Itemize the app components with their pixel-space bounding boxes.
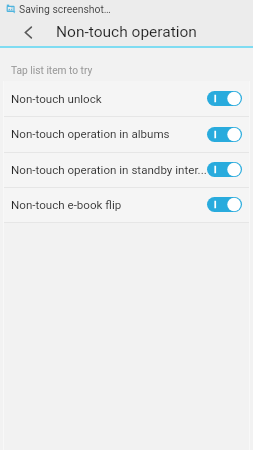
button[interactable]: Non-touch operation in albums [3,116,250,152]
button[interactable]: Non-touch operation in standby inter... [3,152,250,187]
button[interactable]: Toggle on [207,91,242,106]
button[interactable]: Toggle on [207,127,242,142]
button[interactable]: Non-touch unlock [3,81,250,116]
button[interactable]: Back [14,18,42,46]
staticText: Non-touch operation in albums [11,127,207,141]
staticText: Non-touch unlock [11,92,207,106]
staticText: Non-touch operation [56,23,197,41]
staticText: Tap list item to try [11,65,93,77]
staticText: Non-touch e-book flip [11,198,207,212]
staticText: Saving screenshot… [19,3,111,15]
button[interactable]: Toggle on [207,162,242,177]
button[interactable]: Non-touch e-book flip [3,187,250,222]
button[interactable]: Toggle on [207,197,242,212]
staticText: Non-touch operation in standby inter... [11,163,207,177]
